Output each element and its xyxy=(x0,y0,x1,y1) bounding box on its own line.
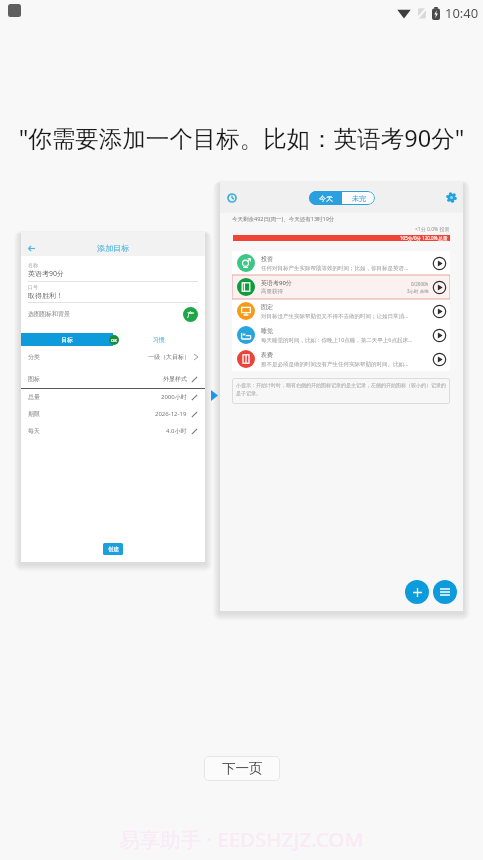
staticText: 105分/0分 120.0% 总量 xyxy=(400,235,448,241)
staticText: 习惯 xyxy=(153,336,165,344)
staticText: 每天睡觉的时间，比如：你晚上10点睡，第二天早上6点起床… xyxy=(261,336,413,344)
staticText: 下一页 xyxy=(222,760,263,777)
staticText: 对目标没产生实际帮助但又不得不去做的时间；让如日常消… xyxy=(261,312,409,320)
staticText: 投资 xyxy=(261,255,273,263)
button[interactable]: 英语考90分 xyxy=(232,275,450,299)
staticText: 目标 xyxy=(61,336,73,344)
staticText: 易享助手 · EEDSHZJZ.COM xyxy=(119,825,364,853)
staticText: 4.0小时 xyxy=(166,427,187,435)
staticText: 那不是必须是做的时间没有产生任何实际帮助的时间。比如… xyxy=(261,360,409,368)
staticText: 分类 xyxy=(28,353,40,361)
staticText: 今天剩余492日(周一)、今天还有13时19分 xyxy=(232,215,335,223)
staticText: 口号 xyxy=(28,284,38,290)
staticText: 今天 xyxy=(319,194,333,203)
button[interactable]: 下一页 xyxy=(204,756,280,781)
staticText: 未完 xyxy=(352,194,366,203)
button[interactable]: 目标 xyxy=(21,333,113,346)
staticText: 英语考90分 xyxy=(261,279,292,287)
button[interactable]: 习惯 xyxy=(113,333,205,346)
other: Start xyxy=(432,304,447,319)
button[interactable]: 图标 xyxy=(21,371,205,387)
staticText: <1分 0.0% 投资 xyxy=(415,226,450,233)
staticText: 总量 xyxy=(28,393,40,401)
staticText: 名称 xyxy=(28,262,38,268)
staticText: 每天 xyxy=(28,427,40,435)
staticText: 创建 xyxy=(108,546,119,553)
button[interactable]: 表费 xyxy=(232,347,450,371)
button[interactable]: 期限 xyxy=(21,406,205,422)
button[interactable]: Add xyxy=(405,580,429,604)
other: Start xyxy=(432,352,447,367)
other: Start xyxy=(432,256,447,271)
staticText: "你需要添加一个目标。比如：英语考90分" xyxy=(0,122,483,154)
staticText: 小提示：开始计时时，顺有右侧的开始图标记录的是主记录，左侧的开始图标（较小的）记… xyxy=(236,382,446,396)
button[interactable]: History xyxy=(227,193,237,203)
staticText: 英语考90分 xyxy=(28,269,65,279)
button[interactable]: 投资 xyxy=(232,251,450,275)
staticText: 期限 xyxy=(28,410,40,418)
staticText: 表费 xyxy=(261,351,273,359)
staticText: 2026-12-19 xyxy=(155,410,187,418)
staticText: 外显样式 xyxy=(163,375,187,383)
button[interactable]: 分类 xyxy=(21,349,205,365)
staticText: 3小时 未统 xyxy=(407,288,429,294)
staticText: 取得胜利！ xyxy=(28,291,63,300)
staticText: 0/2000h xyxy=(411,281,429,287)
button[interactable]: 创建 xyxy=(103,543,123,555)
button[interactable]: Settings xyxy=(446,192,457,203)
button[interactable]: 今天 xyxy=(309,191,342,205)
staticText: 一级（大目标） xyxy=(148,353,190,361)
staticText: 固定 xyxy=(261,303,273,311)
button[interactable]: 睡觉 xyxy=(232,323,450,347)
staticText: 高量获得 xyxy=(261,288,283,295)
staticText: 10:40 xyxy=(445,4,479,22)
button[interactable]: Back xyxy=(28,245,35,252)
staticText: 产 xyxy=(187,310,194,319)
button[interactable]: Menu xyxy=(433,580,457,604)
button[interactable]: 未完 xyxy=(342,191,375,205)
staticText: 选图图标和背景 xyxy=(28,310,70,318)
staticText: 睡觉 xyxy=(261,327,273,335)
staticText: 任何对目标产生实际帮助等效的时间；比如，你目标是英语… xyxy=(261,264,409,272)
other: Start xyxy=(432,328,447,343)
staticText: 图标 xyxy=(28,375,40,383)
button[interactable]: 每天 xyxy=(21,423,205,439)
staticText: 添加目标 xyxy=(97,243,129,253)
other: Start xyxy=(432,280,447,295)
button[interactable]: 固定 xyxy=(232,299,450,323)
button[interactable]: 总量 xyxy=(21,389,205,405)
staticText: OK xyxy=(111,338,117,343)
staticText: 2000小时 xyxy=(161,393,187,401)
